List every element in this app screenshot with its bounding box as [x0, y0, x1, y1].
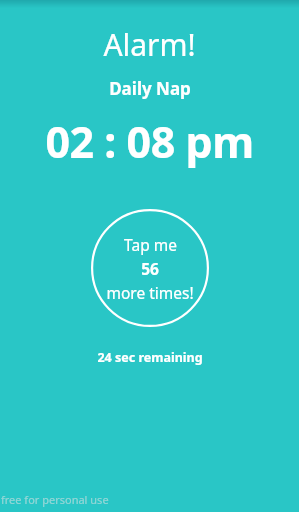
- staticText: free for personal use: [1, 492, 109, 507]
- staticText: 56: [141, 258, 159, 279]
- staticText: Alarm!: [103, 24, 196, 65]
- staticText: Daily Nap: [109, 77, 191, 100]
- staticText: more times!: [106, 282, 194, 303]
- staticText: 24 sec remaining: [97, 349, 203, 366]
- button[interactable]: Tap me: [91, 209, 209, 327]
- staticText: 02 : 08 pm: [45, 112, 254, 171]
- staticText: Tap me: [124, 234, 177, 255]
